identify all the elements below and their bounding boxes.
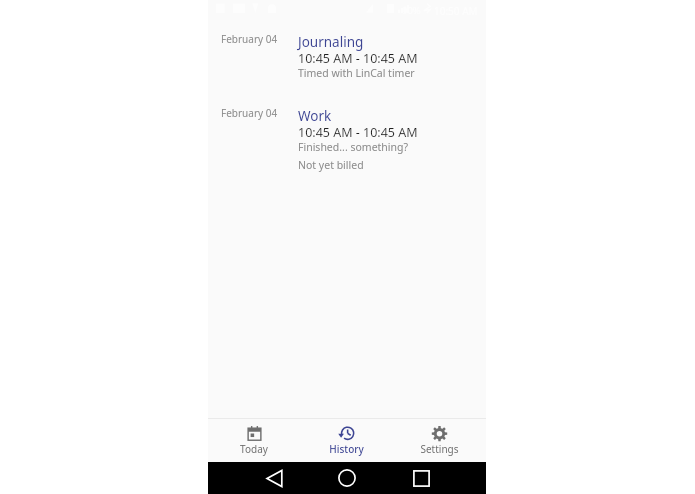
staticText: February 04 bbox=[221, 106, 278, 120]
staticText: 10:45 AM - 10:45 AM bbox=[298, 124, 418, 141]
staticText: February 04 bbox=[221, 32, 278, 46]
staticText: Journaling bbox=[298, 33, 364, 51]
button[interactable]: Recent apps bbox=[406, 463, 436, 493]
button[interactable]: February 04 bbox=[208, 28, 486, 90]
staticText: Today bbox=[240, 442, 268, 456]
button[interactable]: Settings bbox=[393, 419, 486, 462]
staticText: Finished... something? bbox=[298, 140, 409, 154]
staticText: Not yet billed bbox=[298, 158, 364, 172]
staticText: Timed with LinCal timer bbox=[298, 66, 415, 80]
button[interactable]: History bbox=[300, 419, 393, 462]
button[interactable]: Today bbox=[208, 419, 300, 462]
staticText: History bbox=[329, 442, 364, 456]
staticText: Settings bbox=[420, 442, 459, 456]
staticText: 10:45 AM - 10:45 AM bbox=[298, 50, 418, 67]
button[interactable]: Home bbox=[332, 463, 362, 493]
button[interactable]: Back bbox=[259, 463, 289, 493]
button[interactable]: February 04 bbox=[208, 102, 486, 182]
staticText: Work bbox=[298, 107, 332, 125]
